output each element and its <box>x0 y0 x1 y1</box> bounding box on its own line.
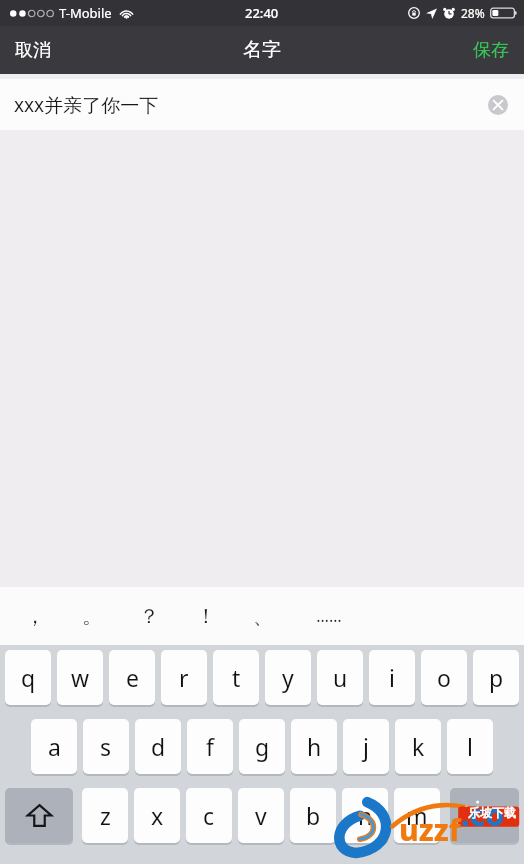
button[interactable]: Clear text <box>483 90 513 120</box>
staticText: 、 <box>253 604 273 629</box>
button[interactable]: f <box>187 719 233 774</box>
staticText: ！ <box>196 604 216 629</box>
staticText: 取消 <box>15 39 51 62</box>
staticText: uzzf <box>399 809 461 850</box>
staticText: …… <box>316 605 342 627</box>
button[interactable]: p <box>473 650 519 705</box>
button[interactable]: 取消 <box>0 26 66 74</box>
staticText: i <box>389 662 395 693</box>
staticText: 名字 <box>243 38 281 62</box>
staticText: 保存 <box>473 39 509 62</box>
staticText: g <box>255 731 270 762</box>
button[interactable]: Backspace <box>450 788 519 843</box>
button[interactable]: Shift <box>5 788 73 843</box>
button[interactable]: n <box>342 788 388 843</box>
button[interactable]: a <box>31 719 77 774</box>
button[interactable]: u <box>317 650 363 705</box>
staticText: o <box>437 662 451 693</box>
staticText: f <box>206 731 214 762</box>
staticText: 28% <box>461 5 485 21</box>
button[interactable]: m <box>394 788 440 843</box>
button[interactable]: y <box>265 650 311 705</box>
staticText: T-Mobile <box>59 4 112 22</box>
button[interactable]: …… <box>291 587 367 645</box>
button[interactable]: z <box>82 788 128 843</box>
button[interactable]: l <box>447 719 493 774</box>
button[interactable]: x <box>134 788 180 843</box>
button[interactable]: k <box>395 719 441 774</box>
staticText: p <box>489 662 504 693</box>
staticText: n <box>358 800 373 831</box>
staticText: m <box>406 800 428 831</box>
button[interactable]: v <box>238 788 284 843</box>
staticText: d <box>151 731 166 762</box>
button[interactable]: t <box>213 650 259 705</box>
button[interactable]: 、 <box>234 587 291 645</box>
staticText: s <box>100 731 112 762</box>
staticText: h <box>307 731 322 762</box>
staticText: xxx并亲了你一下 <box>14 92 159 118</box>
staticText: t <box>232 662 241 693</box>
button[interactable]: e <box>109 650 155 705</box>
staticText: .com <box>461 794 522 850</box>
button[interactable]: h <box>291 719 337 774</box>
staticText: 乐坡下载 <box>468 805 516 820</box>
button[interactable]: ， <box>6 587 63 645</box>
button[interactable]: ？ <box>120 587 177 645</box>
button[interactable]: b <box>290 788 336 843</box>
staticText: r <box>179 662 189 693</box>
button[interactable]: s <box>83 719 129 774</box>
staticText: x <box>151 800 164 831</box>
staticText: w <box>71 662 90 693</box>
button[interactable]: q <box>5 650 51 705</box>
button[interactable]: o <box>421 650 467 705</box>
staticText: a <box>48 731 61 762</box>
staticText: q <box>21 662 36 693</box>
button[interactable]: d <box>135 719 181 774</box>
staticText: l <box>467 731 473 762</box>
staticText: y <box>282 662 294 693</box>
button[interactable]: i <box>369 650 415 705</box>
staticText: 22:40 <box>245 4 279 22</box>
staticText: ， <box>25 604 45 629</box>
staticText: k <box>412 731 425 762</box>
button[interactable]: 保存 <box>458 26 524 74</box>
button[interactable]: 。 <box>63 587 120 645</box>
staticText: b <box>306 800 321 831</box>
button[interactable]: j <box>343 719 389 774</box>
staticText: e <box>126 662 139 693</box>
staticText: j <box>363 731 369 762</box>
button[interactable]: xxx并亲了你一下 <box>0 79 524 130</box>
staticText: 。 <box>82 604 102 629</box>
staticText: u <box>333 662 348 693</box>
button[interactable]: r <box>161 650 207 705</box>
staticText: ？ <box>139 604 159 629</box>
staticText: z <box>100 800 111 831</box>
button[interactable]: c <box>186 788 232 843</box>
staticText: c <box>203 800 215 831</box>
button[interactable]: w <box>57 650 103 705</box>
button[interactable]: ！ <box>177 587 234 645</box>
staticText: v <box>255 800 267 831</box>
button[interactable]: g <box>239 719 285 774</box>
